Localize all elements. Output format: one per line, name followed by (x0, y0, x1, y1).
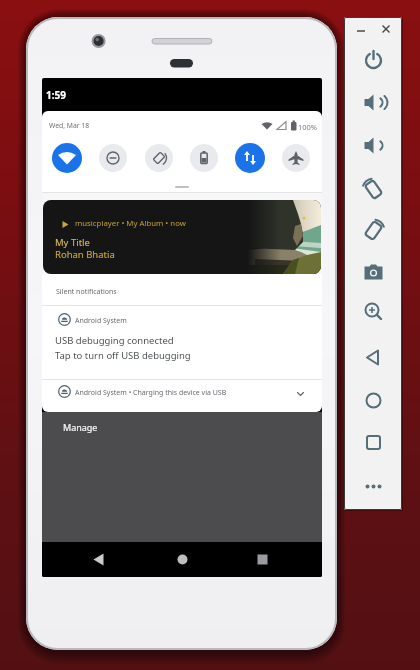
button[interactable] (145, 144, 173, 172)
button[interactable] (42, 274, 322, 412)
staticText: Tap to turn off USB debugging (55, 349, 191, 362)
staticText: musicplayer • My Album • now (75, 218, 186, 229)
button[interactable] (235, 143, 265, 173)
button[interactable] (377, 21, 395, 37)
button[interactable] (360, 298, 387, 325)
staticText: USB debugging connected (55, 334, 174, 347)
button[interactable] (170, 547, 195, 572)
staticText: Rohan Bhatia (55, 248, 115, 261)
button[interactable]: musicplayer • My Album • now (43, 200, 321, 274)
button[interactable] (52, 143, 82, 173)
button[interactable]: Manage (52, 414, 112, 436)
button[interactable] (282, 144, 310, 172)
button[interactable] (360, 89, 387, 116)
button[interactable] (360, 344, 387, 371)
staticText: Silent notifications (56, 287, 117, 297)
button[interactable] (190, 144, 218, 172)
staticText: Wed, Mar 18 (49, 121, 90, 130)
button[interactable] (360, 473, 387, 500)
staticText: 100% (298, 122, 318, 132)
button[interactable] (86, 547, 111, 572)
button[interactable] (250, 547, 275, 572)
staticText: Android System (75, 316, 127, 326)
button[interactable] (360, 429, 387, 456)
button[interactable] (99, 144, 127, 172)
button[interactable] (360, 175, 387, 202)
staticText: Manage (63, 421, 98, 433)
button[interactable] (360, 46, 387, 73)
staticText: Android System • Charging this device vi… (75, 388, 227, 398)
button[interactable] (360, 387, 387, 414)
button[interactable] (352, 21, 370, 37)
button[interactable] (360, 132, 387, 159)
button[interactable] (360, 258, 387, 285)
staticText: My Title (55, 236, 90, 249)
staticText: 1:59 (46, 88, 66, 102)
button[interactable] (360, 216, 387, 243)
